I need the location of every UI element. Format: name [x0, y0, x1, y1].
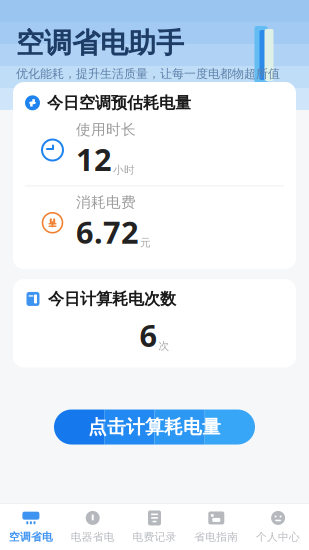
staticText: 优化能耗，提升生活质量，让每一度电都物超所值	[16, 66, 280, 81]
button[interactable]: 电器省电	[62, 510, 124, 543]
button[interactable]: 电费记录	[124, 510, 185, 543]
staticText: 元	[140, 236, 151, 249]
staticText: 省电指南	[194, 530, 238, 543]
staticText: 空调省电助手	[16, 26, 184, 60]
button[interactable]: 省电指南	[185, 510, 247, 543]
staticText: 使用时长	[76, 121, 136, 139]
staticText: 小时	[113, 163, 135, 176]
staticText: 空调省电	[9, 530, 53, 543]
staticText: 电器省电	[71, 530, 115, 543]
staticText: 消耗电费	[76, 193, 136, 211]
staticText: 个人中心	[256, 530, 300, 543]
staticText: 6.72	[76, 211, 139, 252]
staticText: 点击计算耗电量	[88, 415, 221, 438]
button[interactable]: 点击计算耗电量	[54, 409, 255, 444]
staticText: 今日计算耗电次数	[48, 289, 176, 309]
button[interactable]: 空调省电	[0, 510, 62, 543]
button[interactable]: 个人中心	[247, 510, 309, 543]
staticText: 今日空调预估耗电量	[47, 93, 191, 113]
staticText: 电费记录	[132, 530, 176, 543]
staticText: 6	[139, 315, 157, 355]
staticText: 次	[158, 339, 169, 352]
staticText: 12	[76, 139, 112, 179]
